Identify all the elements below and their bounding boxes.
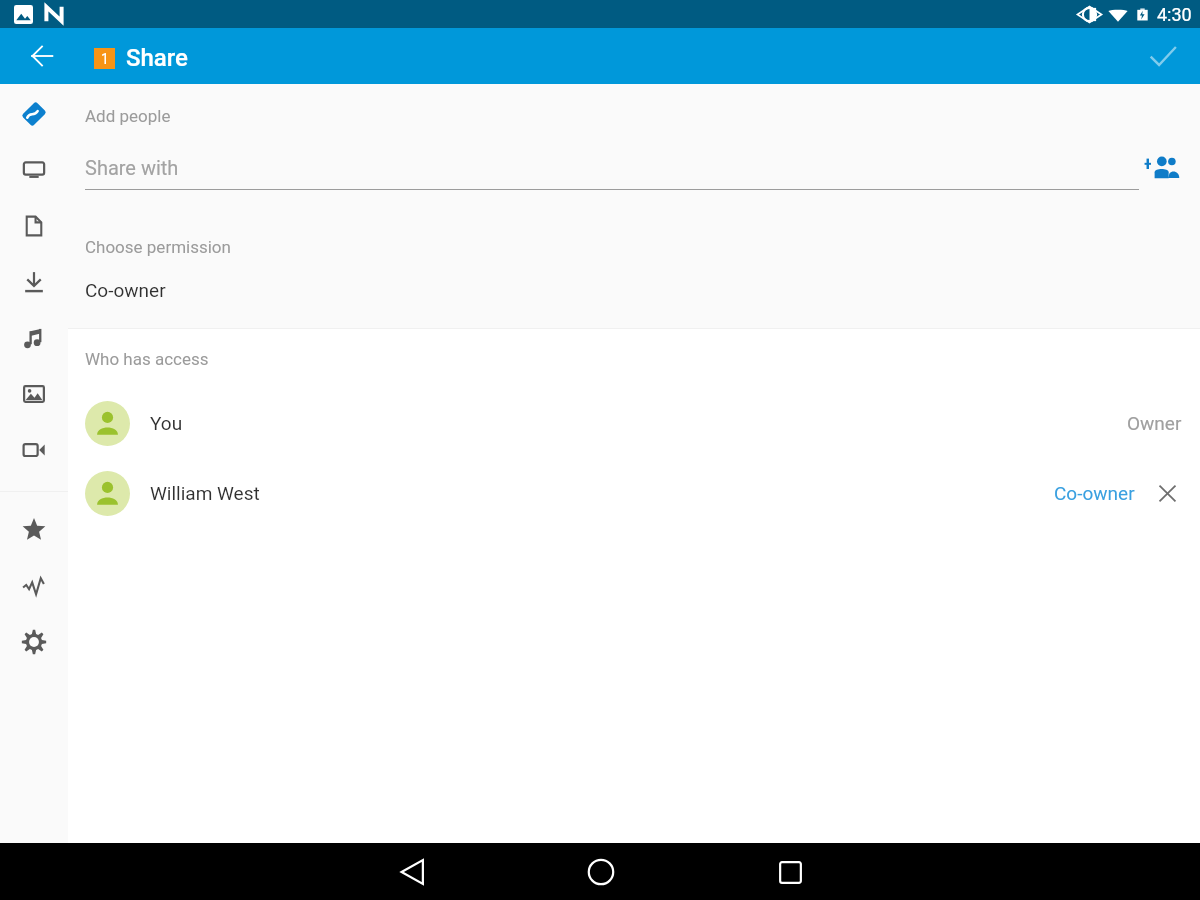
button[interactable]: Remove access bbox=[1150, 476, 1184, 510]
button[interactable]: William West bbox=[68, 458, 1200, 528]
staticText: William West bbox=[150, 482, 260, 504]
staticText: Co-owner bbox=[1054, 482, 1135, 504]
staticText: Add people bbox=[85, 106, 171, 126]
button[interactable]: You bbox=[68, 388, 1200, 458]
button[interactable]: Navigation item bbox=[0, 558, 68, 614]
button[interactable]: Navigation item bbox=[0, 422, 68, 478]
button[interactable]: Home bbox=[577, 848, 625, 896]
staticText: 1 bbox=[101, 51, 109, 67]
button[interactable]: Navigation item bbox=[0, 614, 68, 670]
staticText: Choose permission bbox=[85, 237, 231, 257]
button[interactable]: Navigation item bbox=[0, 502, 68, 558]
button[interactable]: Confirm bbox=[1135, 28, 1191, 84]
button[interactable]: Co-owner bbox=[85, 279, 166, 301]
staticText: Owner bbox=[1127, 412, 1182, 434]
staticText: Who has access bbox=[85, 349, 209, 369]
staticText: You bbox=[150, 412, 183, 434]
button[interactable]: Navigation item bbox=[0, 142, 68, 198]
button[interactable]: Navigation item bbox=[0, 310, 68, 366]
button[interactable]: Navigation item bbox=[0, 366, 68, 422]
button[interactable]: Add person bbox=[1140, 150, 1184, 185]
button[interactable]: Navigation item bbox=[0, 198, 68, 254]
button[interactable]: Back bbox=[389, 848, 437, 896]
staticText: Share with bbox=[85, 156, 179, 179]
button[interactable]: Back bbox=[14, 28, 70, 84]
button[interactable]: Recent apps bbox=[766, 848, 814, 896]
staticText: Share bbox=[126, 44, 188, 72]
staticText: 4:30 bbox=[1157, 4, 1192, 25]
button[interactable]: Navigation item bbox=[0, 254, 68, 310]
button[interactable]: Navigation item bbox=[0, 86, 68, 142]
